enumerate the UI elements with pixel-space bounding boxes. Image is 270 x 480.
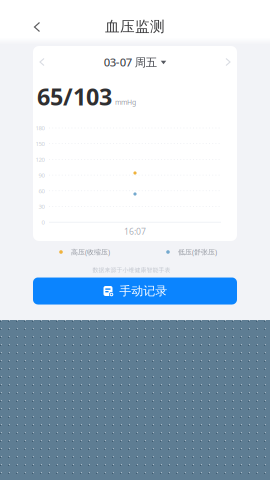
staticText: 高压(收缩压) [71,247,110,257]
staticText: 血压监测 [105,17,165,36]
button[interactable]: Back [25,13,48,40]
staticText: 30 [38,202,44,211]
staticText: 16:07 [124,226,146,237]
button[interactable]: Next day [219,51,237,72]
button[interactable]: 手动记录 [33,277,237,304]
staticText: 65/103 [37,81,112,112]
staticText: 数据来源于小维健康智能手表 [92,266,170,274]
staticText: 90 [38,171,44,179]
staticText: 180 [35,124,44,132]
button[interactable]: 03-07 周五 [99,49,171,75]
staticText: 150 [35,140,44,148]
staticText: 低压(舒张压) [178,247,217,257]
staticText: 手动记录 [119,283,167,298]
staticText: 120 [35,155,44,163]
staticText: 03-07 周五 [104,54,157,70]
staticText: mmHg [115,97,136,107]
staticText: 0 [41,218,44,226]
staticText: 60 [38,187,44,195]
button[interactable]: Previous day [33,51,51,72]
